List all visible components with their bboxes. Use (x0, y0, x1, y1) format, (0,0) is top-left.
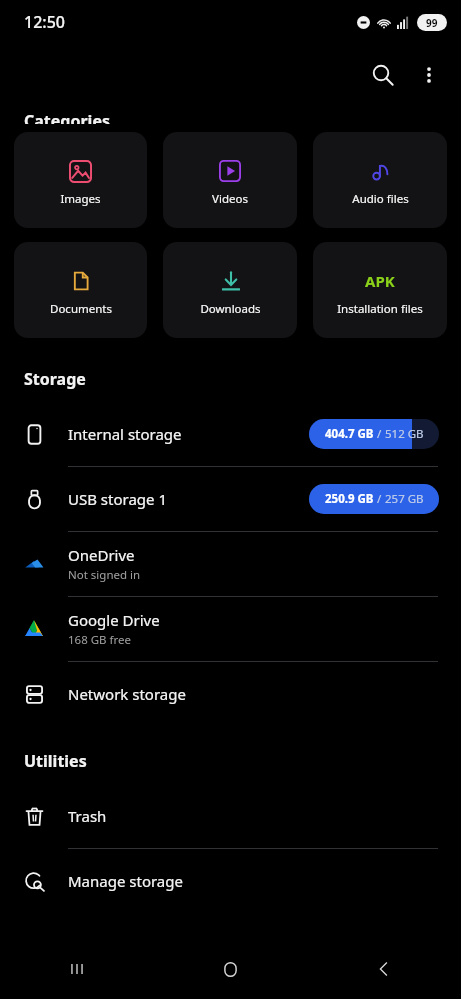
staticText: 404.7 GB (325, 426, 374, 442)
button[interactable]: OneDrive (0, 532, 461, 596)
staticText: Manage storage (68, 871, 183, 891)
button[interactable]: APK (313, 242, 447, 338)
button[interactable]: Images (14, 132, 147, 228)
button[interactable]: More options (407, 53, 451, 97)
staticText: APK (365, 271, 395, 291)
staticText: Categories (24, 110, 110, 124)
button[interactable]: USB storage 1 (0, 467, 461, 531)
staticText: Google Drive (68, 610, 160, 630)
staticText: 250.9 GB (325, 491, 374, 507)
button[interactable]: Audio files (313, 132, 447, 228)
staticText: Internal storage (68, 424, 182, 444)
button[interactable]: Downloads (163, 242, 297, 338)
staticText: / (374, 426, 385, 442)
button[interactable]: Documents (14, 242, 147, 338)
staticText: Utilities (24, 750, 87, 772)
button[interactable]: Search (359, 51, 407, 99)
button[interactable]: Home (153, 939, 307, 999)
staticText: Storage (24, 368, 86, 390)
staticText: Network storage (68, 684, 186, 704)
button[interactable]: Google Drive (0, 597, 461, 661)
staticText: Audio files (352, 191, 409, 207)
button[interactable]: Internal storage (0, 402, 461, 466)
staticText: 257 GB (385, 491, 424, 507)
staticText: / (374, 491, 385, 507)
staticText: Images (60, 191, 101, 207)
button[interactable]: Network storage (0, 662, 461, 726)
staticText: Not signed in (68, 567, 141, 583)
staticText: 512 GB (385, 426, 424, 442)
button[interactable]: Trash (0, 784, 461, 848)
button[interactable]: Back (307, 939, 461, 999)
button[interactable]: Recent apps (0, 939, 153, 999)
staticText: OneDrive (68, 545, 135, 565)
staticText: Downloads (200, 301, 261, 317)
staticText: Videos (212, 191, 248, 207)
staticText: 99 (426, 16, 438, 30)
staticText: Documents (50, 301, 112, 317)
staticText: 168 GB free (68, 632, 132, 648)
staticText: Installation files (337, 301, 423, 317)
button[interactable]: Videos (163, 132, 297, 228)
button[interactable]: Manage storage (0, 849, 461, 913)
staticText: 12:50 (24, 11, 65, 33)
staticText: Trash (68, 806, 107, 826)
staticText: USB storage 1 (68, 489, 168, 509)
